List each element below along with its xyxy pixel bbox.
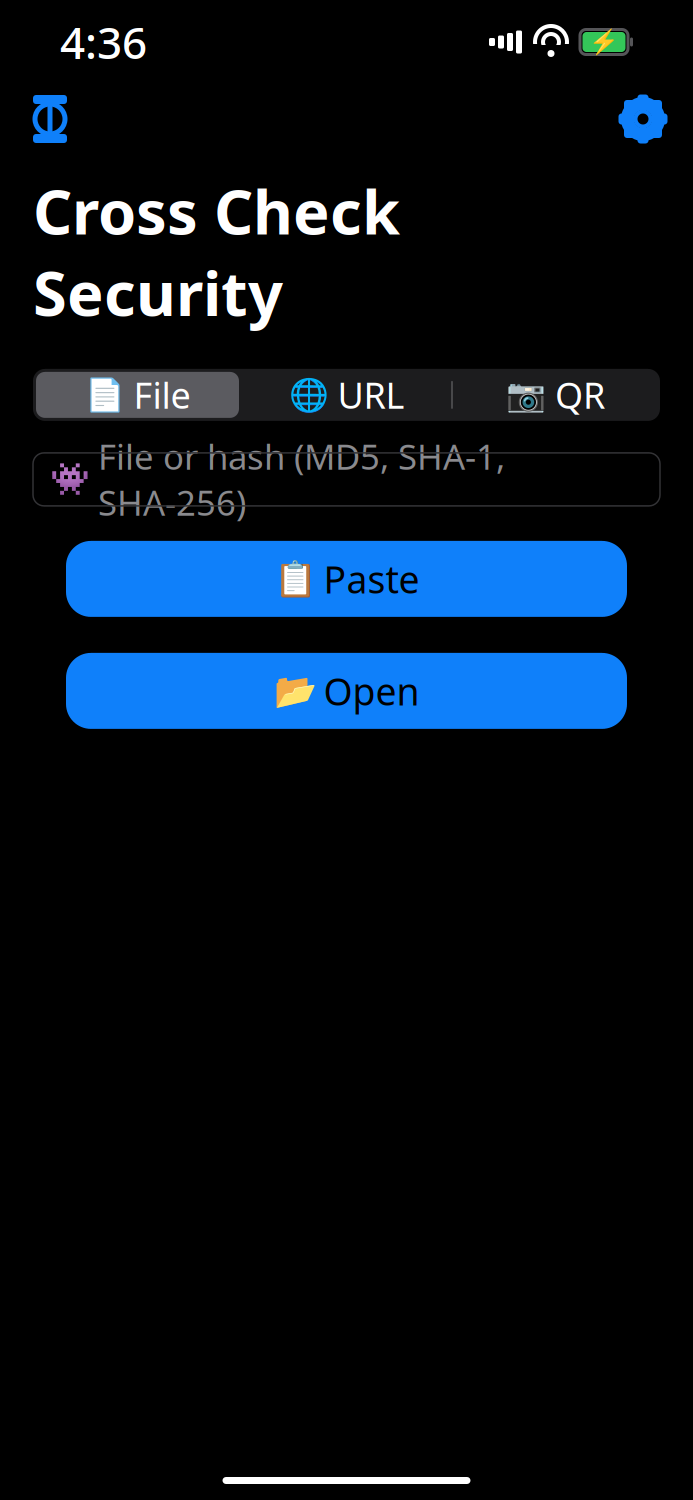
staticText: Paste bbox=[323, 554, 419, 604]
staticText: QR bbox=[555, 371, 605, 419]
staticText: Cross Check Security bbox=[33, 170, 400, 333]
staticText: 👾 bbox=[50, 461, 90, 498]
button[interactable]: Settings bbox=[615, 91, 671, 147]
button[interactable]: 📄 bbox=[33, 372, 242, 418]
staticText: 📄 bbox=[84, 377, 124, 413]
staticText: 📂 bbox=[273, 671, 316, 711]
button[interactable]: 📷 bbox=[451, 369, 660, 421]
staticText: 📋 bbox=[273, 559, 316, 599]
button[interactable]: 🌐 bbox=[242, 369, 451, 421]
button[interactable]: 📋 bbox=[66, 541, 627, 617]
staticText: File or hash (MD5, SHA-1, SHA-256) bbox=[98, 433, 505, 525]
staticText: File bbox=[133, 371, 190, 419]
staticText: 📷 bbox=[506, 377, 546, 413]
staticText: Open bbox=[323, 666, 419, 716]
staticText: ⚡ bbox=[589, 28, 619, 56]
staticText: 4:36 bbox=[60, 13, 147, 71]
button[interactable]: History bbox=[22, 91, 78, 147]
staticText: URL bbox=[337, 371, 404, 419]
button[interactable]: 📂 bbox=[66, 653, 627, 729]
staticText: 🌐 bbox=[288, 377, 328, 413]
